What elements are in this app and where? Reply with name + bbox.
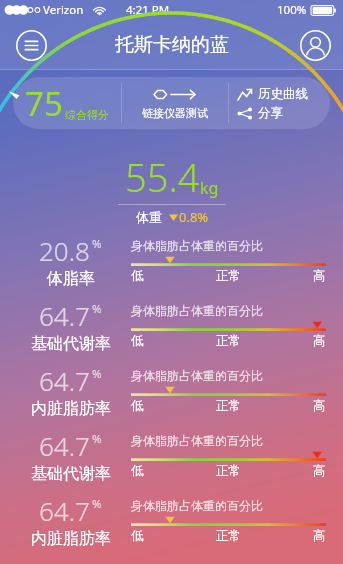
button[interactable]: 链接仪器测试 xyxy=(122,87,228,120)
staticText: % xyxy=(92,301,102,317)
staticText: 身体脂肪占体重的百分比 xyxy=(131,433,263,448)
staticText: 内脏脂肪率 xyxy=(31,399,111,419)
staticText: 内脏脂肪率 xyxy=(31,529,111,549)
button[interactable]: 历史曲线 xyxy=(237,86,330,102)
staticText: 链接仪器测试 xyxy=(142,106,208,120)
staticText: % xyxy=(92,236,102,252)
staticText: kg xyxy=(200,177,219,199)
staticText: 75 xyxy=(25,81,63,126)
staticText: 4:21 PM xyxy=(126,2,170,18)
staticText: 55.4 xyxy=(125,151,200,203)
button[interactable]: 64.7 xyxy=(0,488,343,553)
staticText: 低 xyxy=(131,333,144,349)
staticText: 100% xyxy=(277,2,307,18)
staticText: Verizon xyxy=(43,2,84,18)
staticText: 低 xyxy=(131,398,144,414)
button[interactable]: Menu xyxy=(16,30,47,61)
button[interactable]: 64.7 xyxy=(0,293,343,358)
button[interactable]: 分享 xyxy=(237,105,330,121)
staticText: 正常 xyxy=(216,268,241,284)
staticText: 身体脂肪占体重的百分比 xyxy=(131,303,263,318)
staticText: 高 xyxy=(313,333,326,349)
staticText: 高 xyxy=(313,398,326,414)
staticText: 64.7 xyxy=(39,493,90,528)
staticText: 20.8 xyxy=(39,233,90,268)
staticText: 正常 xyxy=(216,333,241,349)
staticText: 历史曲线 xyxy=(258,86,308,102)
staticText: 64.7 xyxy=(39,298,90,333)
staticText: 托斯卡纳的蓝 xyxy=(115,33,229,57)
staticText: 低 xyxy=(131,268,144,284)
staticText: 正常 xyxy=(216,463,241,479)
staticText: 分享 xyxy=(258,105,283,121)
button[interactable]: 64.7 xyxy=(0,358,343,423)
staticText: 身体脂肪占体重的百分比 xyxy=(131,498,263,513)
staticText: 基础代谢率 xyxy=(31,334,111,354)
staticText: 综合得分 xyxy=(65,108,109,122)
button[interactable]: 64.7 xyxy=(0,423,343,488)
button[interactable]: Profile xyxy=(300,30,331,61)
staticText: 高 xyxy=(313,528,326,544)
staticText: 低 xyxy=(131,528,144,544)
staticText: 正常 xyxy=(216,398,241,414)
staticText: 身体脂肪占体重的百分比 xyxy=(131,238,263,253)
staticText: 低 xyxy=(131,463,144,479)
staticText: % xyxy=(92,366,102,382)
button[interactable]: 20.8 xyxy=(0,228,343,293)
staticText: 64.7 xyxy=(39,428,90,463)
staticText: 高 xyxy=(313,463,326,479)
staticText: 高 xyxy=(313,268,326,284)
button[interactable]: 75 xyxy=(13,81,121,126)
staticText: 0.8% xyxy=(179,208,209,226)
staticText: 64.7 xyxy=(39,363,90,398)
staticText: 体重 xyxy=(136,209,162,225)
staticText: 体脂率 xyxy=(47,269,95,289)
staticText: % xyxy=(92,496,102,512)
staticText: 身体脂肪占体重的百分比 xyxy=(131,368,263,383)
staticText: % xyxy=(92,431,102,447)
staticText: 正常 xyxy=(216,528,241,544)
staticText: 基础代谢率 xyxy=(31,464,111,484)
